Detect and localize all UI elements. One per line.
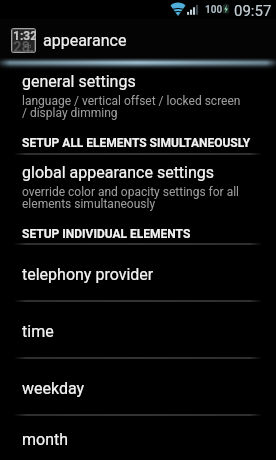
staticText: Fri Jun	[25, 43, 34, 53]
button[interactable]: time	[0, 302, 276, 357]
staticText: SETUP INDIVIDUAL ELEMENTS	[22, 228, 191, 241]
staticText: 28	[13, 38, 31, 53]
button[interactable]: appearance app icon	[0, 19, 276, 60]
button[interactable]: global appearance settings	[0, 155, 276, 214]
staticText: time	[22, 323, 54, 341]
button[interactable]: month	[0, 416, 276, 460]
button[interactable]: telephony provider	[0, 245, 276, 300]
staticText: appearance	[43, 33, 127, 50]
button[interactable]: weekday	[0, 359, 276, 414]
staticText: language / vertical offset / locked scre…	[22, 94, 243, 120]
staticText: SETUP ALL ELEMENTS SIMULTANEOUSLY	[22, 137, 251, 150]
staticText: 100	[205, 4, 223, 16]
staticText: telephony provider	[22, 266, 154, 284]
staticText: override color and opacity settings for …	[22, 185, 244, 211]
staticText: 09:57	[234, 2, 272, 20]
staticText: month	[22, 431, 69, 449]
staticText: 1:32	[13, 29, 36, 43]
staticText: global appearance settings	[22, 164, 215, 182]
button[interactable]: general settings	[0, 60, 276, 124]
staticText: general settings	[22, 73, 136, 91]
staticText: weekday	[22, 380, 85, 398]
other: appearance app icon	[11, 28, 36, 53]
